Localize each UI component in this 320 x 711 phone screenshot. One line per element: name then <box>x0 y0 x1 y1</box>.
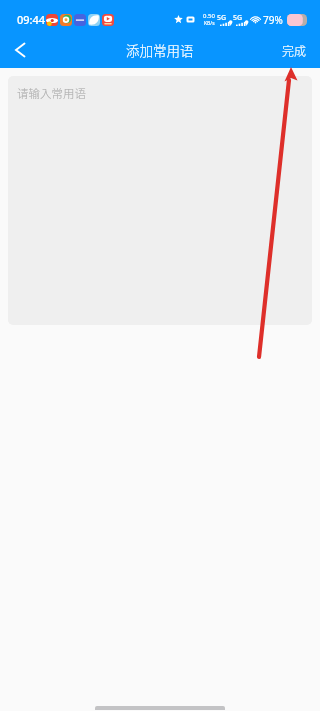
button[interactable]: 请输入常用语 <box>8 76 312 325</box>
staticText: 09:44 <box>17 12 46 27</box>
button[interactable]: Back <box>0 32 40 68</box>
staticText: 0.50 <box>203 12 215 20</box>
staticText: KB/s <box>204 20 215 27</box>
staticText: 添加常用语 <box>126 40 194 60</box>
staticText: 5G <box>233 13 243 23</box>
button[interactable]: 完成 <box>269 34 320 67</box>
staticText: 79% <box>263 13 283 27</box>
staticText: 请输入常用语 <box>17 85 86 102</box>
staticText: 完成 <box>282 42 307 59</box>
staticText: 5G <box>217 13 227 23</box>
